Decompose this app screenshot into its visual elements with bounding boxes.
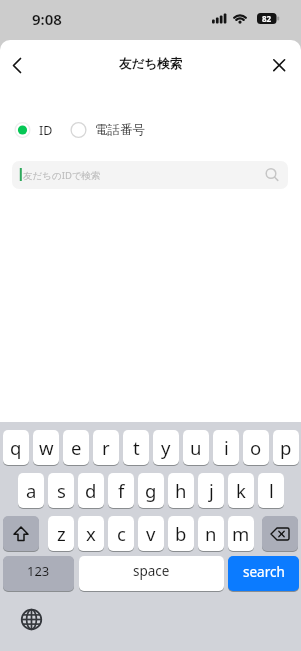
- button[interactable]: u: [183, 430, 209, 465]
- staticText: m: [232, 521, 250, 546]
- staticText: a: [26, 478, 37, 503]
- staticText: k: [236, 478, 246, 503]
- button[interactable]: t: [123, 430, 149, 465]
- staticText: search: [243, 563, 285, 581]
- button[interactable]: [3, 516, 39, 551]
- button[interactable]: g: [138, 473, 164, 508]
- staticText: y: [161, 435, 171, 460]
- button[interactable]: [66, 118, 151, 142]
- staticText: l: [269, 478, 274, 503]
- staticText: 9:08: [32, 9, 62, 27]
- button[interactable]: o: [243, 430, 269, 465]
- staticText: 友だちのIDで検索: [23, 169, 101, 182]
- button[interactable]: search: [228, 556, 299, 591]
- staticText: g: [145, 478, 157, 503]
- staticText: d: [85, 478, 97, 503]
- button[interactable]: [17, 605, 46, 634]
- button[interactable]: i: [213, 430, 239, 465]
- button[interactable]: z: [48, 516, 74, 551]
- staticText: p: [280, 435, 292, 460]
- button[interactable]: 123: [3, 556, 74, 591]
- button[interactable]: [12, 161, 288, 189]
- staticText: w: [39, 435, 54, 460]
- staticText: 友だち検索: [119, 56, 183, 72]
- button[interactable]: [4, 52, 32, 80]
- button[interactable]: r: [93, 430, 119, 465]
- staticText: r: [102, 435, 110, 460]
- button[interactable]: p: [273, 430, 299, 465]
- button[interactable]: [262, 516, 298, 551]
- staticText: t: [133, 435, 140, 460]
- staticText: s: [57, 478, 66, 503]
- button[interactable]: f: [108, 473, 134, 508]
- button[interactable]: j: [198, 473, 224, 508]
- button[interactable]: [265, 52, 293, 80]
- staticText: ID: [39, 122, 53, 138]
- staticText: n: [205, 521, 217, 546]
- button[interactable]: k: [228, 473, 254, 508]
- button[interactable]: a: [18, 473, 44, 508]
- button[interactable]: w: [33, 430, 59, 465]
- staticText: x: [86, 521, 96, 546]
- button[interactable]: c: [108, 516, 134, 551]
- button[interactable]: e: [63, 430, 89, 465]
- staticText: i: [224, 435, 229, 460]
- staticText: u: [190, 435, 202, 460]
- staticText: b: [175, 521, 187, 546]
- staticText: e: [71, 435, 82, 460]
- button[interactable]: [10, 118, 65, 142]
- staticText: f: [118, 478, 125, 503]
- button[interactable]: n: [198, 516, 224, 551]
- button[interactable]: space: [79, 556, 224, 591]
- button[interactable]: v: [138, 516, 164, 551]
- staticText: o: [250, 435, 262, 460]
- button[interactable]: b: [168, 516, 194, 551]
- staticText: v: [146, 521, 156, 546]
- button[interactable]: s: [48, 473, 74, 508]
- button[interactable]: m: [228, 516, 254, 551]
- button[interactable]: q: [3, 430, 29, 465]
- button[interactable]: x: [78, 516, 104, 551]
- staticText: j: [209, 478, 214, 503]
- staticText: 電話番号: [95, 122, 145, 138]
- staticText: h: [175, 478, 187, 503]
- staticText: 82: [262, 13, 272, 24]
- staticText: z: [57, 521, 66, 546]
- button[interactable]: l: [258, 473, 284, 508]
- staticText: q: [10, 435, 22, 460]
- button[interactable]: h: [168, 473, 194, 508]
- staticText: 123: [27, 562, 50, 580]
- button[interactable]: y: [153, 430, 179, 465]
- staticText: space: [133, 562, 170, 580]
- button[interactable]: d: [78, 473, 104, 508]
- staticText: c: [117, 521, 126, 546]
